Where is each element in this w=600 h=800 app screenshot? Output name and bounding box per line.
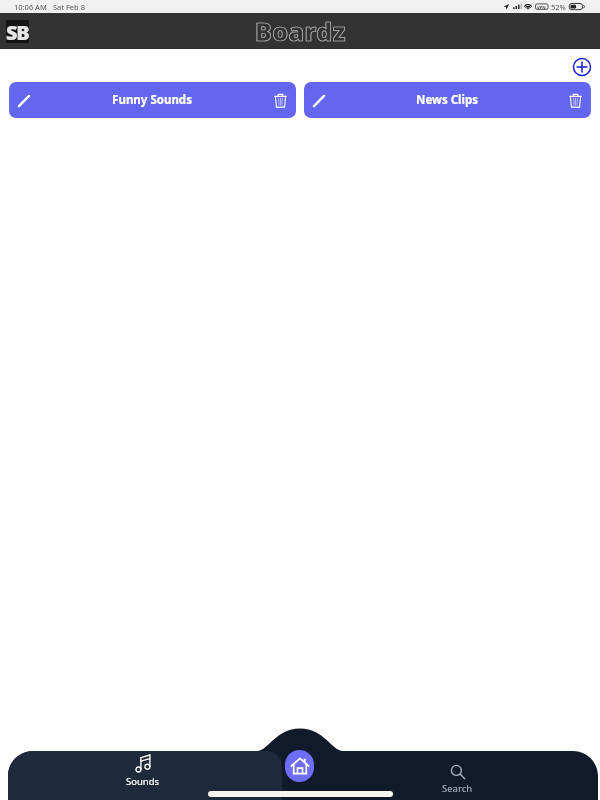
staticText: VPN <box>537 5 546 11</box>
button[interactable]: Edit board <box>15 92 32 109</box>
staticText: News Clips <box>327 92 567 108</box>
staticText: 52% <box>551 2 566 12</box>
button[interactable]: Sounds <box>8 751 282 800</box>
staticText: Search <box>442 782 473 795</box>
button[interactable]: Edit board <box>310 92 327 109</box>
button[interactable]: Delete board <box>272 92 289 109</box>
staticText: Sat Feb 8 <box>53 2 85 12</box>
button[interactable]: Edit board <box>304 82 591 118</box>
button[interactable]: Add board <box>572 57 592 77</box>
button[interactable]: Soundboard logo <box>6 20 29 43</box>
staticText: SB <box>6 19 29 42</box>
staticText: Sounds <box>126 775 160 788</box>
button[interactable]: Delete board <box>567 92 584 109</box>
staticText: Boardz <box>255 14 346 48</box>
button[interactable]: Edit board <box>9 82 296 118</box>
staticText: Funny Sounds <box>32 92 272 108</box>
staticText: 10:06 AM <box>14 2 47 12</box>
button[interactable]: Search <box>399 751 516 800</box>
button[interactable]: Home <box>285 750 314 782</box>
